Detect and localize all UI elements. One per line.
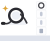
- button[interactable]: Product photo: [36, 10, 46, 18]
- button[interactable]: Product photo: [36, 27, 46, 35]
- button[interactable]: Product photo: [36, 18, 46, 26]
- button[interactable]: Product photo: [36, 1, 46, 9]
